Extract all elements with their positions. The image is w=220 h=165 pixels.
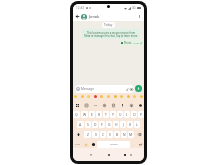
button[interactable]: Switch keyboard [128,152,133,157]
staticText: D [94,122,97,127]
button[interactable]: Emoji [81,95,84,98]
button[interactable]: T [103,111,109,118]
button[interactable]: K [127,121,133,128]
button[interactable]: Keyboard tool [84,103,88,107]
button[interactable]: Q [73,111,80,118]
staticText: I [126,112,128,117]
staticText: V [109,132,112,137]
button[interactable]: Record voice message [135,85,142,92]
staticText: C [102,132,105,137]
button[interactable]: Back [75,14,80,19]
button[interactable]: Emoji [133,95,136,98]
staticText: G [108,122,111,127]
button[interactable]: Emoji [87,95,90,98]
button[interactable]: Emoji [107,95,110,98]
staticText: B [116,132,119,137]
staticText: U [119,112,122,117]
staticText: W [83,112,87,117]
button[interactable]: O [131,111,137,118]
staticText: 12:43 [76,6,85,10]
button[interactable]: Keyboard tool [93,103,97,107]
button[interactable]: This business uses a secure service from… [82,29,140,39]
button[interactable]: Z [84,131,91,138]
staticText: A [79,122,82,127]
staticText: M [129,132,133,137]
staticText: O [133,112,136,117]
staticText: R [98,112,101,117]
staticText: F [101,122,103,127]
button[interactable]: Enter [137,141,144,148]
staticText: This business uses a secure service from… [84,31,138,37]
button[interactable]: Emoji [94,95,97,98]
staticText: Y [112,112,114,117]
button[interactable]: J [120,121,126,128]
button[interactable]: Keyboard tool [102,103,106,107]
button[interactable]: Emoji [114,95,117,98]
staticText: English [110,143,118,146]
button[interactable]: Message [75,85,134,93]
button[interactable]: G [106,121,112,128]
button[interactable]: Photo [120,40,143,46]
button[interactable]: R [96,111,102,118]
button[interactable]: I [124,111,130,118]
button[interactable]: Backspace [135,131,144,138]
button[interactable]: Change keyboard [90,141,96,148]
staticText: . [133,143,134,147]
button[interactable]: Y [110,111,116,118]
button[interactable]: F [99,121,105,128]
staticText: Photo [124,41,132,45]
button[interactable]: Emoji [100,95,103,98]
staticText: H [115,122,118,127]
staticText: Jonak [89,14,100,19]
button[interactable]: V [107,131,113,138]
button[interactable]: A [77,121,84,128]
button[interactable]: Emoji [120,95,123,98]
button[interactable]: Keyboard tool [129,103,133,107]
staticText: J [123,122,124,127]
button[interactable]: Recent apps [122,152,127,157]
button[interactable]: ?123 [73,141,82,148]
staticText: K [129,122,132,127]
button[interactable]: Back [88,152,93,157]
button[interactable]: More options [137,14,142,19]
button[interactable]: N [121,131,127,138]
staticText: 12:43 [133,42,139,45]
staticText: P [140,112,143,117]
button[interactable]: Emoji [140,95,143,98]
staticText: L [136,122,138,127]
button[interactable]: Shift [73,131,83,138]
button[interactable]: B [114,131,120,138]
button[interactable]: Emoji [74,95,77,98]
button[interactable]: Keyboard tool [138,103,142,107]
button[interactable]: D [92,121,98,128]
staticText: E [91,112,93,117]
button[interactable]: H [113,121,119,128]
staticText: X [95,132,97,137]
staticText: Today [104,23,113,27]
button[interactable]: Emoji [127,95,130,98]
button[interactable]: Keyboard tool [111,103,115,107]
button[interactable]: Keyboard tool [75,103,79,107]
staticText: 4G [132,6,136,10]
button[interactable]: L [134,121,140,128]
staticText: Message [81,87,94,91]
button[interactable]: X [92,131,99,138]
button[interactable]: C [100,131,106,138]
staticText: T [105,112,107,117]
button[interactable]: English [97,141,130,148]
button[interactable]: Home [106,152,111,157]
button[interactable]: W [81,111,88,118]
staticText: Z [87,132,89,137]
button[interactable]: U [117,111,123,118]
staticText: ?123 [75,143,80,146]
staticText: S [87,122,89,127]
staticText: N [123,132,126,137]
button[interactable]: P [138,111,144,118]
button[interactable]: Keyboard tool [120,103,124,107]
button[interactable]: S [85,121,91,128]
staticText: Q [75,112,78,117]
button[interactable]: Emoji keyboard [83,141,89,148]
button[interactable]: E [89,111,95,118]
button[interactable]: M [128,131,134,138]
